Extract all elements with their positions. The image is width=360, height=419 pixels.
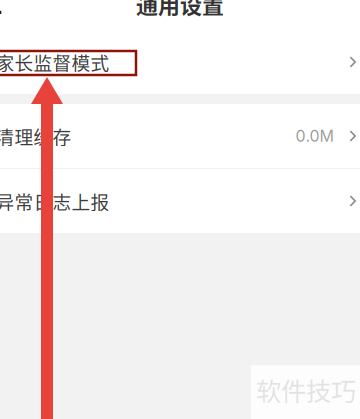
staticText: 清理缓存 bbox=[0, 122, 71, 149]
button[interactable]: 异常日志上报 bbox=[0, 169, 360, 233]
staticText: 通用设置 bbox=[136, 0, 224, 20]
staticText: 家长监督模式 bbox=[0, 48, 109, 75]
button[interactable]: Back bbox=[0, 0, 18, 30]
button[interactable]: 家长监督模式 bbox=[0, 30, 360, 94]
staticText: 异常日志上报 bbox=[0, 187, 109, 214]
staticText: 软件技巧 bbox=[256, 371, 356, 408]
button[interactable]: 清理缓存 bbox=[0, 104, 360, 168]
staticText: 0.0M bbox=[295, 126, 333, 146]
